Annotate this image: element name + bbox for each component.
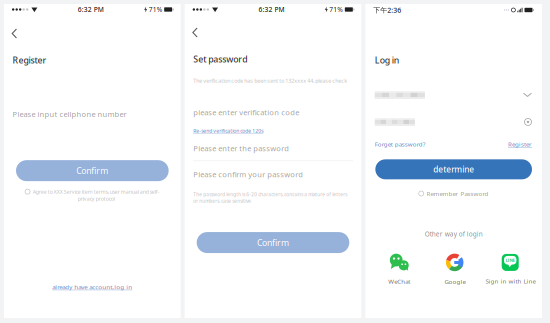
button[interactable]: already have account,log in — [4, 280, 181, 294]
staticText: WeChat — [388, 277, 410, 286]
button[interactable]: Choose account — [522, 91, 533, 99]
staticText: determine — [433, 164, 474, 175]
staticText: Google — [444, 277, 465, 286]
staticText: Confirm — [76, 165, 108, 177]
staticText: already have account,log in — [52, 283, 132, 291]
button[interactable]: LINE — [482, 254, 538, 285]
button[interactable]: Back — [185, 24, 361, 41]
staticText: please enter verification code — [193, 107, 299, 117]
button[interactable]: Remember Password — [365, 189, 542, 198]
staticText: 下午2:36 — [373, 5, 401, 15]
staticText: 71% — [329, 5, 343, 14]
staticText: Other way of login — [425, 230, 483, 238]
button[interactable]: Register — [508, 140, 532, 148]
button[interactable]: Show password — [523, 117, 533, 127]
staticText: Log in — [375, 54, 400, 66]
button[interactable]: determine — [375, 159, 532, 179]
staticText: Agree to XXX Service item terms, user ma… — [33, 188, 160, 202]
button[interactable]: Agree to XXX Service item terms, user ma… — [4, 188, 181, 202]
staticText: 71% — [149, 5, 163, 14]
staticText: The verification code has been sent to 1… — [193, 77, 347, 84]
staticText: 6:32 PM — [78, 5, 104, 14]
staticText: Remember Password — [427, 189, 489, 198]
staticText: LINE — [506, 258, 515, 263]
staticText: Please enter the password — [193, 143, 289, 153]
staticText: Register — [508, 140, 532, 148]
staticText: Please input cellphone number — [12, 109, 126, 119]
staticText: ··· — [503, 5, 509, 15]
button[interactable]: Confirm — [16, 160, 169, 181]
button[interactable]: Re-send verification code 120s — [185, 127, 361, 134]
staticText: The password length is 6-20 characters, … — [193, 191, 347, 204]
button[interactable]: Google — [427, 253, 482, 286]
button[interactable]: WeChat — [371, 254, 427, 286]
button[interactable]: Forget password? — [375, 140, 426, 148]
staticText: Set password — [193, 53, 247, 65]
staticText: 6:32 PM — [258, 5, 284, 14]
staticText: Re-send verification code 120s — [193, 127, 263, 134]
button[interactable]: Confirm — [197, 232, 349, 253]
staticText: Register — [12, 54, 46, 66]
staticText: Please confirm your password — [193, 169, 303, 179]
staticText: Confirm — [257, 237, 289, 248]
staticText: Sign in with Line — [485, 277, 535, 285]
staticText: Forget password? — [375, 140, 426, 148]
button[interactable]: Back — [4, 25, 181, 42]
